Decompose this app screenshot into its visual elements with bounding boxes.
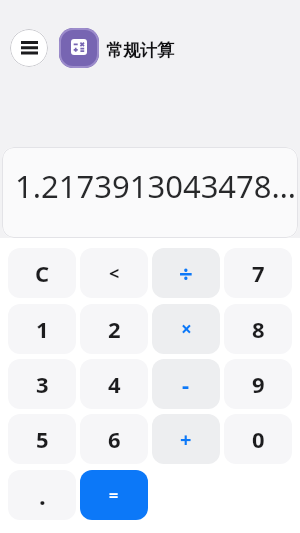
button[interactable]: 2 [80,304,148,354]
staticText: 4 [108,369,121,399]
staticText: × [181,316,192,342]
button[interactable]: 0 [224,414,292,464]
staticText: 2 [108,314,121,344]
staticText: 8 [252,314,265,344]
button[interactable]: 6 [80,414,148,464]
button[interactable]: + [152,414,220,464]
staticText: 3 [36,369,49,399]
button[interactable]: C [8,248,76,298]
button[interactable]: < [80,248,148,298]
button[interactable]: 4 [80,359,148,409]
staticText: 7 [252,258,265,288]
staticText: 5 [36,424,49,454]
staticText: - [182,369,190,399]
button[interactable]: - [152,359,220,409]
staticText: ÷ [179,257,193,290]
button[interactable] [10,29,48,67]
button[interactable]: 3 [8,359,76,409]
staticText: + [180,426,192,453]
button[interactable]: 5 [8,414,76,464]
staticText: 常规计算 [106,40,174,61]
staticText: 1.2173913043478… [15,165,297,207]
staticText: 0 [252,424,265,454]
button[interactable]: 9 [224,359,292,409]
button[interactable]: 1 [8,304,76,354]
staticText: 6 [108,424,121,454]
button[interactable]: 7 [224,248,292,298]
staticText: . [39,479,46,512]
button[interactable]: = [80,470,148,520]
button[interactable] [59,28,99,68]
button[interactable]: ÷ [152,248,220,298]
staticText: 9 [252,369,265,399]
staticText: 1 [36,314,49,344]
staticText: C [35,258,50,288]
button[interactable]: × [152,304,220,354]
button[interactable]: 8 [224,304,292,354]
staticText: < [109,261,120,286]
button[interactable]: . [8,470,76,520]
staticText: = [109,484,119,506]
